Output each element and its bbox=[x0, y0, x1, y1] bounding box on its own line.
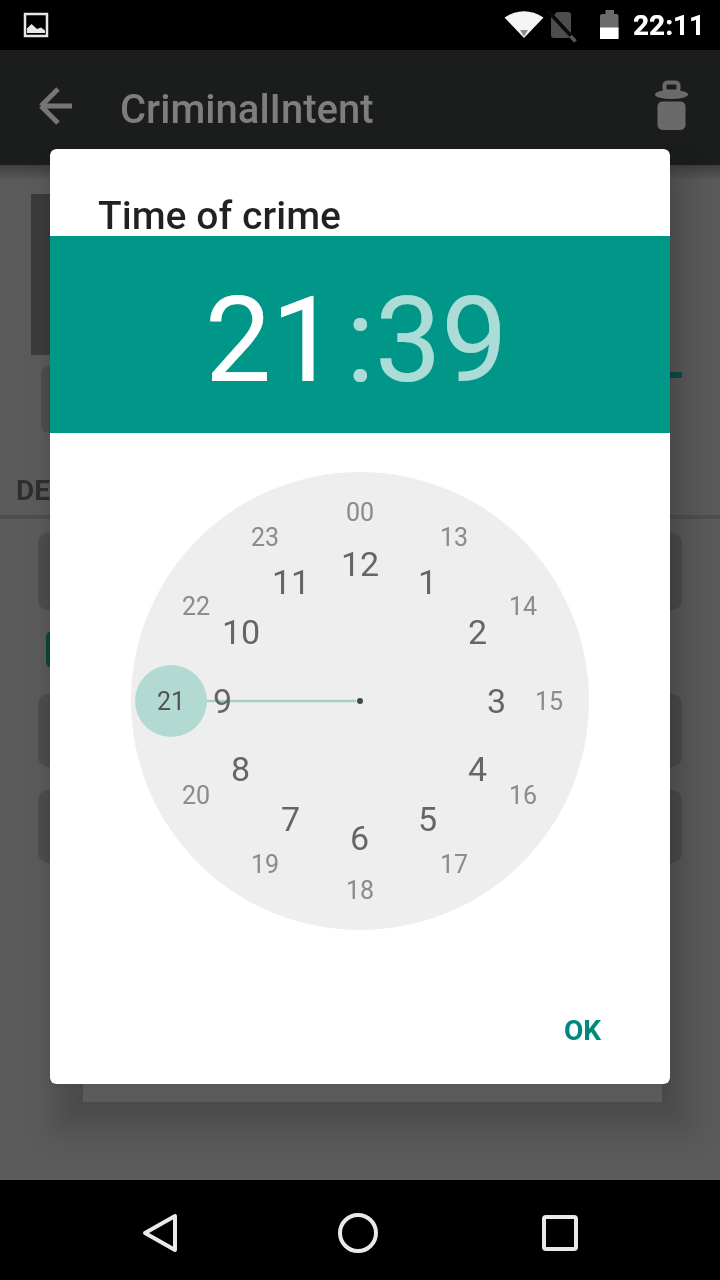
button[interactable]: 5 bbox=[388, 791, 468, 847]
button[interactable]: 18 bbox=[320, 862, 400, 918]
staticText: 1 bbox=[418, 562, 438, 602]
button[interactable]: 39 bbox=[375, 272, 508, 410]
staticText: CriminalIntent bbox=[120, 86, 374, 133]
staticText: 2 bbox=[468, 612, 488, 652]
staticText: 21 bbox=[205, 272, 338, 410]
staticText: 17 bbox=[440, 850, 469, 879]
staticText: 00 bbox=[346, 498, 375, 527]
staticText: 3 bbox=[487, 681, 507, 721]
staticText: 15 bbox=[535, 687, 564, 716]
staticText: : bbox=[346, 272, 375, 410]
staticText: 20 bbox=[182, 781, 211, 810]
button[interactable]: 4 bbox=[438, 741, 518, 797]
button[interactable]: 11 bbox=[251, 554, 331, 610]
staticText: 5 bbox=[418, 799, 438, 839]
staticText: OK bbox=[564, 1014, 602, 1047]
button[interactable]: 3 bbox=[457, 673, 537, 729]
button[interactable]: 13 bbox=[414, 509, 494, 565]
button[interactable] bbox=[130, 1203, 190, 1263]
staticText: 14 bbox=[509, 592, 538, 621]
button[interactable]: 16 bbox=[483, 767, 563, 823]
button[interactable]: 21 bbox=[131, 673, 211, 729]
staticText: Time of crime bbox=[98, 193, 342, 239]
staticText: 11 bbox=[272, 562, 311, 602]
button[interactable] bbox=[530, 1203, 590, 1263]
staticText: 21 bbox=[157, 687, 186, 716]
staticText: 9 bbox=[213, 681, 233, 721]
button[interactable]: 8 bbox=[201, 741, 281, 797]
button[interactable]: 20 bbox=[156, 767, 236, 823]
staticText: 13 bbox=[440, 523, 469, 552]
button[interactable]: 6 bbox=[320, 810, 400, 866]
button[interactable] bbox=[640, 74, 704, 138]
button[interactable]: 9 bbox=[183, 673, 263, 729]
staticText: 7 bbox=[281, 799, 301, 839]
button[interactable]: OK bbox=[518, 998, 648, 1062]
staticText: 10 bbox=[222, 612, 261, 652]
staticText: 23 bbox=[251, 523, 280, 552]
staticText: 22:11 bbox=[633, 9, 706, 42]
button[interactable]: 23 bbox=[225, 509, 305, 565]
button[interactable]: 15 bbox=[509, 673, 589, 729]
staticText: 8 bbox=[231, 749, 251, 789]
staticText: 6 bbox=[350, 818, 370, 858]
staticText: 18 bbox=[346, 876, 375, 905]
button[interactable]: 14 bbox=[483, 578, 563, 634]
button[interactable]: 10 bbox=[201, 604, 281, 660]
staticText: 16 bbox=[509, 781, 538, 810]
button[interactable] bbox=[328, 1203, 388, 1263]
button[interactable]: 2 bbox=[438, 604, 518, 660]
staticText: 39 bbox=[375, 272, 508, 410]
staticText: 12 bbox=[341, 544, 380, 584]
button[interactable]: 12 bbox=[320, 536, 400, 592]
staticText: 19 bbox=[251, 850, 280, 879]
button[interactable]: 1 bbox=[388, 554, 468, 610]
button[interactable]: 7 bbox=[251, 791, 331, 847]
staticText: 22 bbox=[182, 592, 211, 621]
button[interactable] bbox=[24, 74, 88, 138]
staticText: DETAILS bbox=[16, 474, 126, 507]
button[interactable]: 21 bbox=[205, 272, 338, 410]
button[interactable]: 22 bbox=[156, 578, 236, 634]
button[interactable]: 19 bbox=[225, 836, 305, 892]
staticText: 4 bbox=[468, 749, 488, 789]
button[interactable]: 00 bbox=[320, 484, 400, 540]
button[interactable]: 17 bbox=[414, 836, 494, 892]
